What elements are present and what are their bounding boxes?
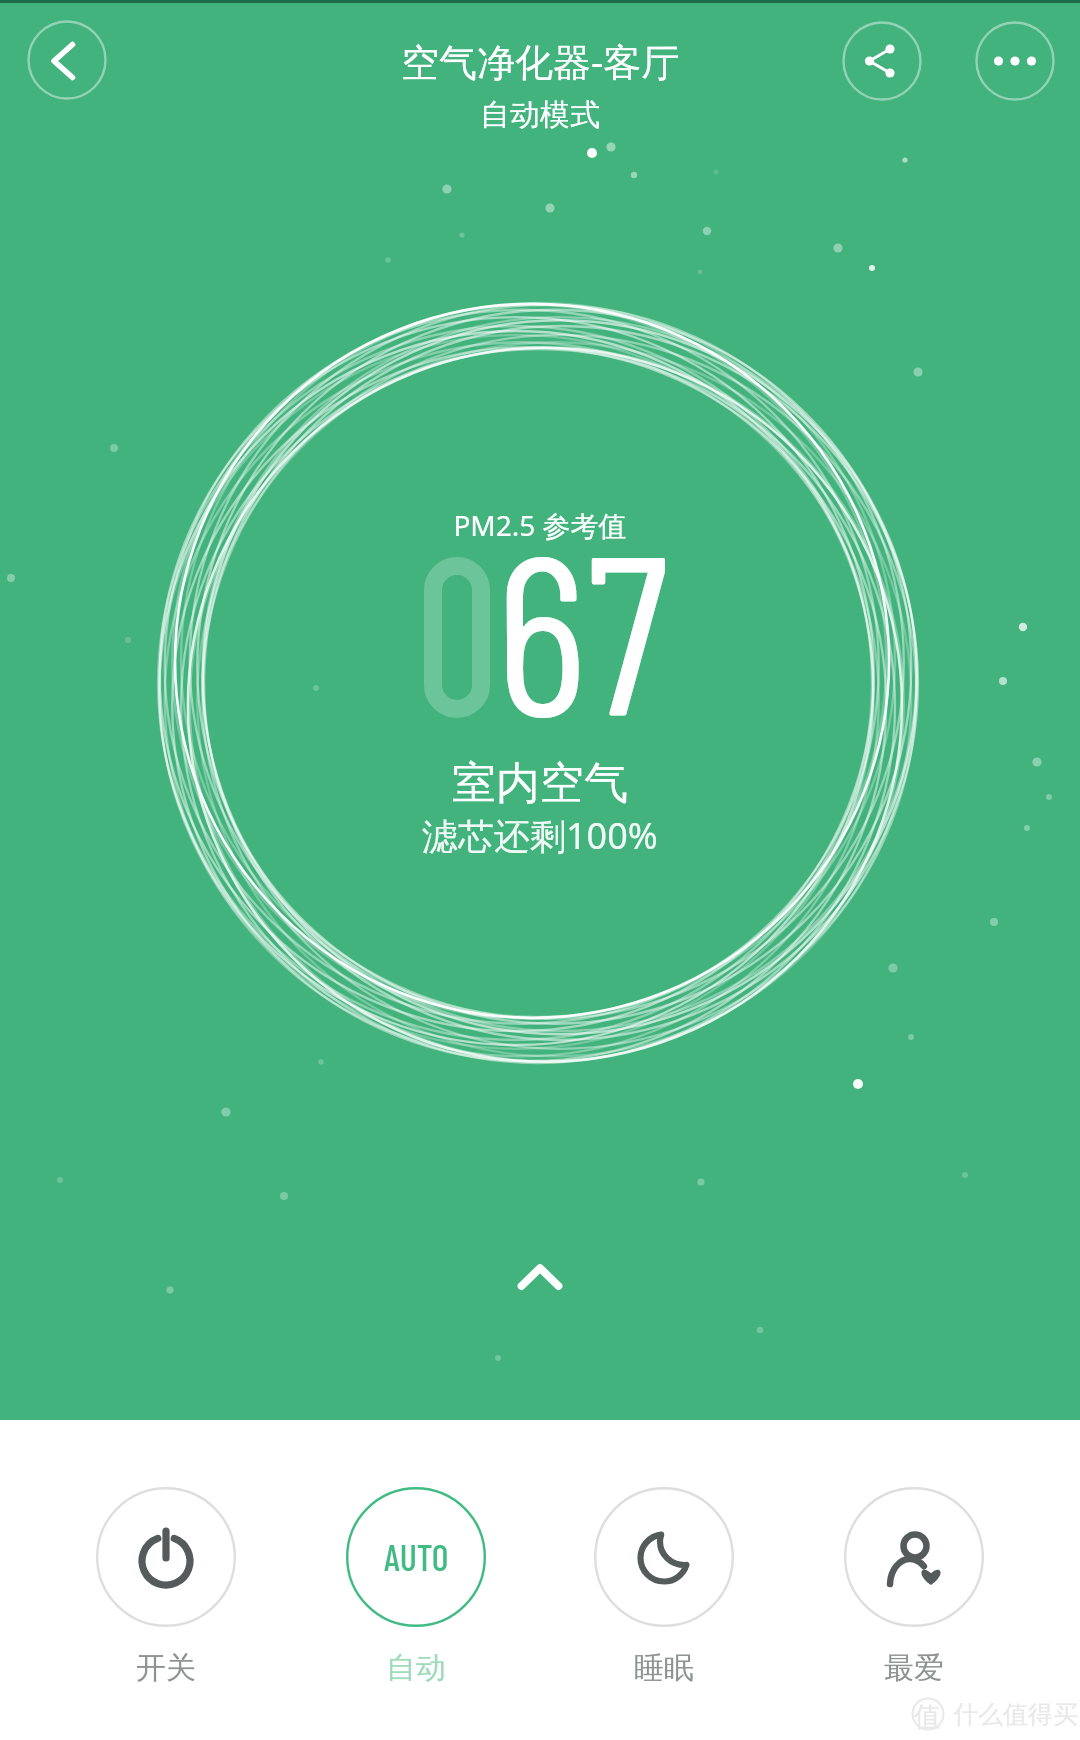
staticText: PM2.5 参考值 (453, 506, 627, 544)
staticText: 睡眠 (634, 1649, 694, 1687)
button[interactable]: Back (23, 16, 111, 104)
staticText: 什么值得买 (953, 1699, 1078, 1730)
button[interactable]: Auto mode (326, 1480, 506, 1710)
staticText: 室内空气 (452, 756, 628, 811)
staticText: 滤芯还剩100% (422, 811, 658, 860)
staticText: 自动 (386, 1649, 446, 1687)
staticText: AUTO (384, 1535, 449, 1578)
staticText: 最爱 (884, 1649, 944, 1687)
staticText: 值 (914, 1700, 941, 1734)
button[interactable]: Power (76, 1480, 256, 1710)
staticText: 空气净化器-客厅 (401, 35, 680, 87)
button[interactable]: More options (971, 17, 1059, 105)
staticText: 开关 (136, 1649, 196, 1687)
button[interactable]: Sleep mode (574, 1480, 754, 1710)
button[interactable]: Expand details (480, 1217, 600, 1337)
button[interactable]: Share (838, 17, 926, 105)
button[interactable]: Favourite (824, 1480, 1004, 1710)
staticText: 自动模式 (480, 96, 600, 134)
staticText: 67 (495, 492, 669, 761)
